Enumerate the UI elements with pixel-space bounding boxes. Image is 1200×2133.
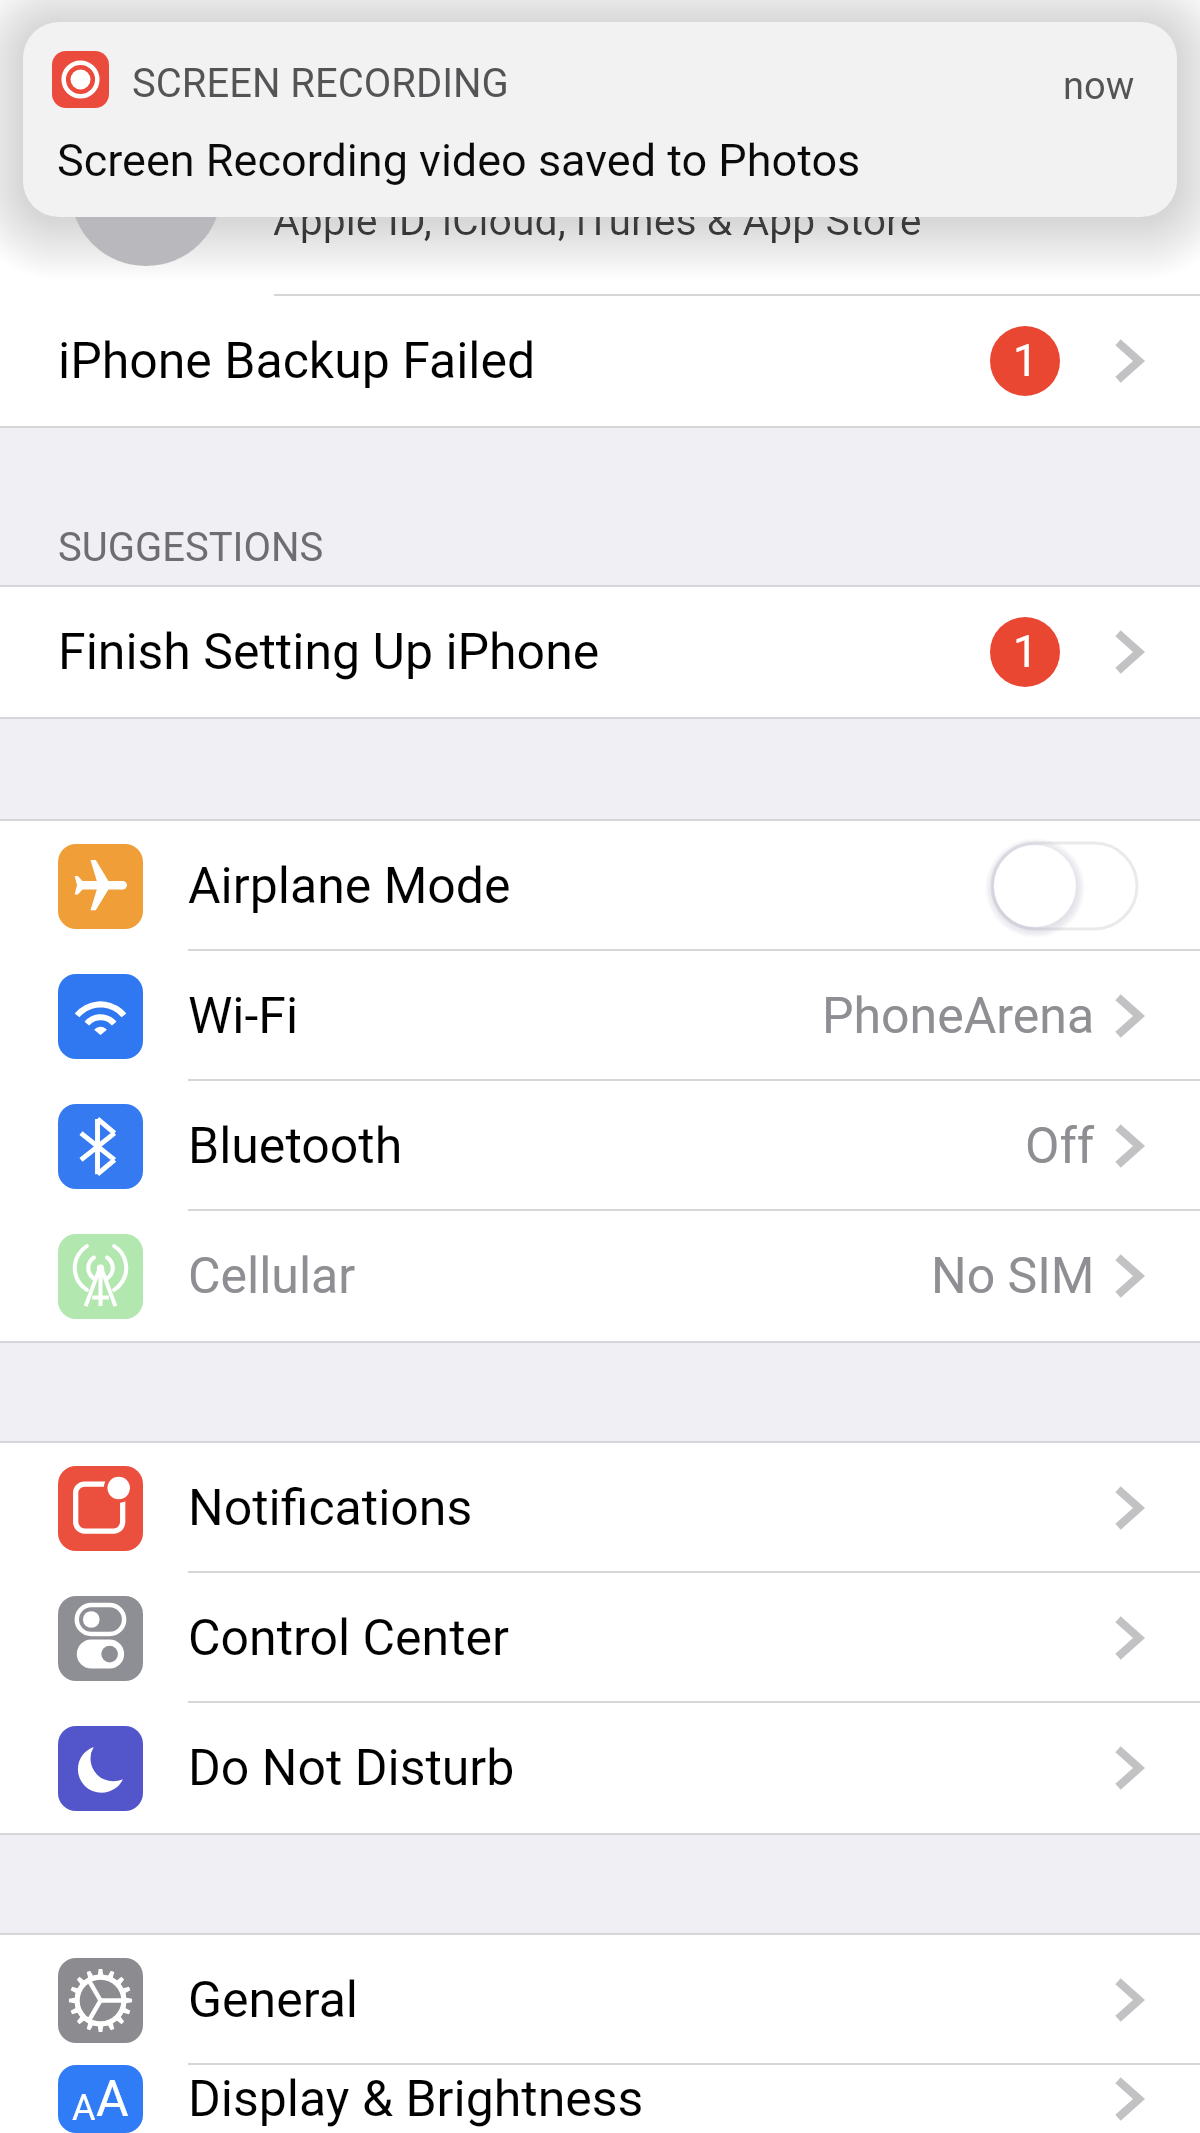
button[interactable]: Bluetooth (0, 1081, 1200, 1211)
staticText: Screen Recording video saved to Photos (57, 134, 861, 187)
staticText: 1 (1013, 626, 1038, 678)
staticText: Finish Setting Up iPhone (58, 623, 600, 682)
button[interactable]: Wi-Fi (0, 951, 1200, 1081)
button[interactable]: SCREEN RECORDING (23, 22, 1177, 217)
staticText: Off (1025, 1117, 1095, 1176)
button[interactable]: Cellular (0, 1211, 1200, 1341)
staticText: Notifications (188, 1479, 473, 1538)
staticText: iPhone Backup Failed (58, 332, 536, 391)
button[interactable]: General (0, 1935, 1200, 2065)
staticText: Do Not Disturb (188, 1739, 515, 1798)
staticText: General (188, 1971, 359, 2030)
staticText: A (96, 2070, 129, 2129)
staticText: Apple ID, iCloud, iTunes & App Store (273, 197, 922, 245)
staticText: SCREEN RECORDING (132, 60, 509, 107)
staticText: Display & Brightness (188, 2070, 644, 2129)
staticText: now (1063, 64, 1135, 109)
button[interactable]: Control Center (0, 1573, 1200, 1703)
staticText: Airplane Mode (188, 857, 511, 916)
staticText: PhoneArena (822, 987, 1095, 1046)
staticText: No SIM (931, 1247, 1095, 1306)
button[interactable]: A (0, 2065, 1200, 2133)
button[interactable]: Do Not Disturb (0, 1703, 1200, 1833)
button[interactable]: Airplane Mode toggle (991, 838, 1141, 934)
button[interactable]: Airplane Mode (0, 821, 1200, 951)
staticText: Bluetooth (188, 1117, 403, 1176)
button[interactable]: Finish Setting Up iPhone (0, 587, 1200, 717)
staticText: SUGGESTIONS (58, 524, 324, 571)
staticText: A (72, 2087, 96, 2129)
staticText: Wi-Fi (188, 987, 299, 1046)
staticText: 1 (1013, 335, 1038, 387)
staticText: Cellular (188, 1247, 356, 1306)
button[interactable]: Notifications (0, 1443, 1200, 1573)
button[interactable]: iPhone Backup Failed (0, 296, 1200, 426)
staticText: Control Center (188, 1609, 510, 1668)
